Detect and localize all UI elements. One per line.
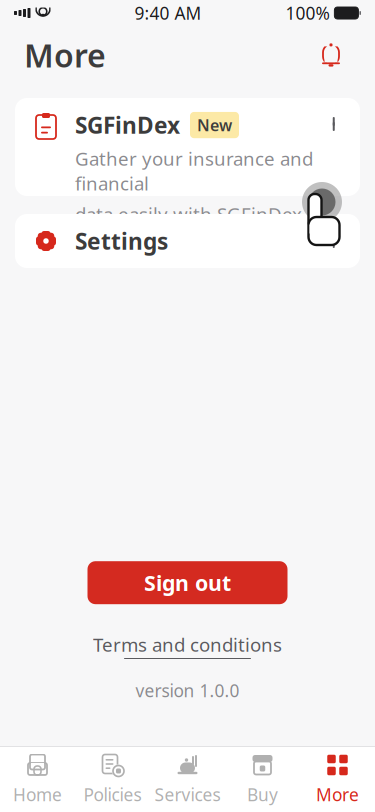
staticText: Gather your insurance and financial (75, 146, 313, 196)
staticText: 9:40 AM (134, 1, 201, 24)
staticText: 100% (285, 1, 329, 24)
staticText: Policies (83, 783, 141, 806)
button[interactable]: Settings (15, 214, 360, 268)
button[interactable]: Notifications (311, 35, 351, 75)
staticText: SGFinDex (75, 110, 180, 140)
button[interactable]: Policies (75, 747, 150, 812)
staticText: Terms and conditions (93, 632, 282, 657)
staticText: New (197, 114, 232, 136)
button[interactable]: Home (0, 747, 75, 812)
staticText: data easily with SGFinDex. (75, 202, 307, 226)
button[interactable]: SGFinDex (15, 98, 360, 196)
staticText: version 1.0.0 (135, 679, 239, 702)
staticText: Buy (247, 783, 278, 806)
staticText: Services (154, 783, 220, 806)
staticText: More (316, 783, 359, 806)
button[interactable]: More (300, 747, 375, 812)
staticText: Home (13, 783, 62, 806)
button[interactable]: Services (150, 747, 225, 812)
staticText: More (24, 34, 106, 76)
button[interactable]: Sign out (87, 561, 287, 604)
staticText: Settings (75, 226, 168, 256)
staticText: Sign out (144, 568, 231, 597)
button[interactable]: Buy (225, 747, 300, 812)
button[interactable]: Terms and conditions (83, 626, 292, 665)
